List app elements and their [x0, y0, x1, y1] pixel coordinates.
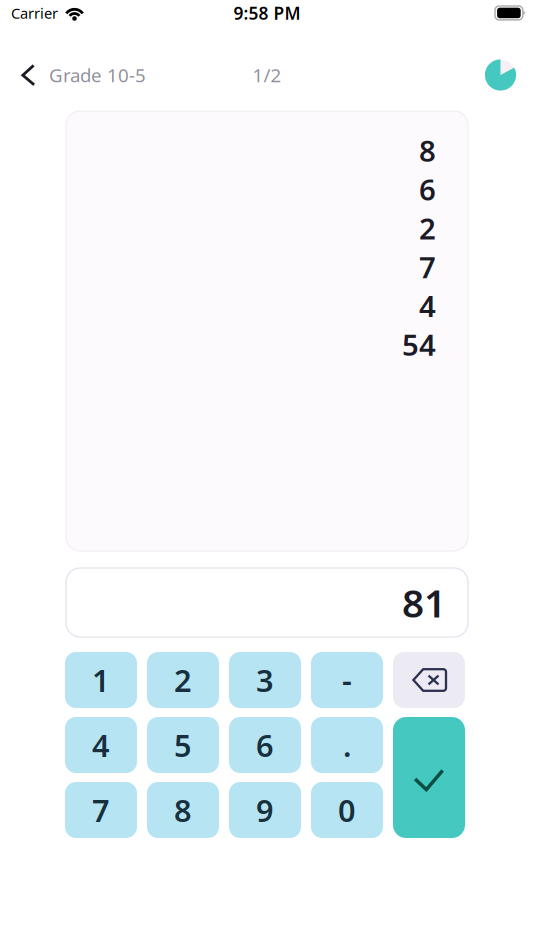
staticText: 8 — [419, 131, 436, 170]
staticText: 54 — [402, 325, 436, 364]
staticText: 2 — [419, 208, 436, 247]
staticText: - — [342, 660, 352, 700]
button[interactable]: 4 — [65, 717, 137, 773]
staticText: . — [343, 725, 351, 765]
staticText: 6 — [256, 725, 274, 765]
staticText: 81 — [402, 577, 446, 628]
button[interactable]: 1 — [65, 652, 137, 708]
button[interactable]: 0 — [311, 782, 383, 838]
staticText: 6 — [419, 170, 436, 209]
button[interactable]: 3 — [229, 652, 301, 708]
staticText: 8 — [174, 790, 192, 830]
staticText: 4 — [419, 286, 436, 325]
button[interactable]: 7 — [65, 782, 137, 838]
staticText: 1/2 — [252, 63, 281, 87]
button[interactable]: 9 — [229, 782, 301, 838]
staticText: 3 — [256, 660, 274, 700]
staticText: 9:58 PM — [233, 1, 300, 24]
button[interactable]: 2 — [147, 652, 219, 708]
staticText: 2 — [174, 660, 192, 700]
button[interactable]: Progress — [467, 53, 534, 97]
button[interactable]: 8 — [147, 782, 219, 838]
staticText: 1 — [92, 660, 110, 700]
button[interactable]: 81 — [66, 568, 468, 637]
button[interactable]: Delete — [393, 652, 465, 708]
button[interactable]: 5 — [147, 717, 219, 773]
staticText: 5 — [174, 725, 192, 765]
staticText: 0 — [338, 790, 356, 830]
staticText: 9 — [256, 790, 274, 830]
staticText: 4 — [92, 725, 110, 765]
button[interactable]: - — [311, 652, 383, 708]
staticText: Carrier — [11, 3, 58, 23]
button[interactable]: . — [311, 717, 383, 773]
staticText: 7 — [419, 247, 436, 286]
staticText: Grade 10-5 — [49, 63, 146, 87]
staticText: 7 — [92, 790, 110, 830]
button[interactable]: 6 — [229, 717, 301, 773]
button[interactable]: Grade 10-5 — [0, 53, 158, 97]
button[interactable]: Submit — [393, 717, 465, 838]
